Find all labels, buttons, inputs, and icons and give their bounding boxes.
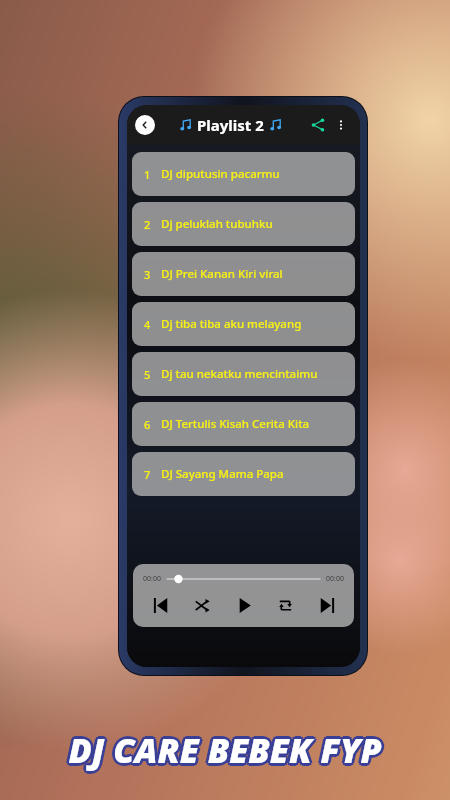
staticText: DJ CARE BEBEK FYP [68, 724, 382, 770]
staticText: 4 [144, 317, 151, 332]
button[interactable]: 2 [132, 202, 355, 246]
button[interactable]: Share [306, 113, 330, 137]
staticText: Playlist 2 [197, 115, 264, 135]
staticText: 3 [144, 267, 151, 282]
button[interactable]: Shuffle [189, 592, 215, 618]
staticText: DJ CARE BEBEK FYP [70, 725, 384, 771]
staticText: 2 [144, 217, 151, 232]
staticText: 5 [144, 367, 151, 382]
button[interactable]: 6 [132, 402, 355, 446]
button[interactable]: 5 [132, 352, 355, 396]
staticText: Dj tiba tiba aku melayang [161, 316, 302, 332]
button[interactable]: More options [330, 114, 352, 136]
staticText: 00:00 [326, 574, 344, 584]
staticText: DJ CARE BEBEK FYP [68, 727, 382, 773]
staticText: 6 [144, 417, 151, 432]
staticText: 1 [144, 167, 151, 182]
staticText: DJ CARE BEBEK FYP [66, 729, 380, 775]
staticText: DJ CARE BEBEK FYP [65, 727, 379, 773]
button[interactable]: 3 [132, 252, 355, 296]
staticText: Dj tau nekatku mencintaimu [161, 366, 318, 382]
staticText: DJ CARE BEBEK FYP [71, 727, 385, 773]
staticText: DJ Tertulis Kisah Cerita Kita [161, 416, 310, 432]
staticText: DJ Sayang Mama Papa [161, 466, 284, 482]
button[interactable]: Repeat [272, 592, 298, 618]
button[interactable]: 1 [132, 152, 355, 196]
staticText: DJ diputusin pacarmu [161, 166, 280, 182]
button[interactable]: Previous [147, 592, 173, 618]
staticText: DJ CARE BEBEK FYP [66, 725, 380, 771]
button[interactable]: 4 [132, 302, 355, 346]
button[interactable]: Back [135, 115, 155, 135]
button[interactable]: 7 [132, 452, 355, 496]
button[interactable]: Play [231, 592, 257, 618]
button[interactable]: Next [314, 592, 340, 618]
staticText: Dj peluklah tubuhku [161, 216, 273, 232]
staticText: 00:00 [143, 574, 161, 584]
staticText: DJ CARE BEBEK FYP [68, 730, 382, 776]
staticText: 7 [144, 467, 151, 482]
staticText: DJ Prei Kanan Kiri viral [161, 266, 283, 282]
staticText: DJ CARE BEBEK FYP [70, 729, 384, 775]
